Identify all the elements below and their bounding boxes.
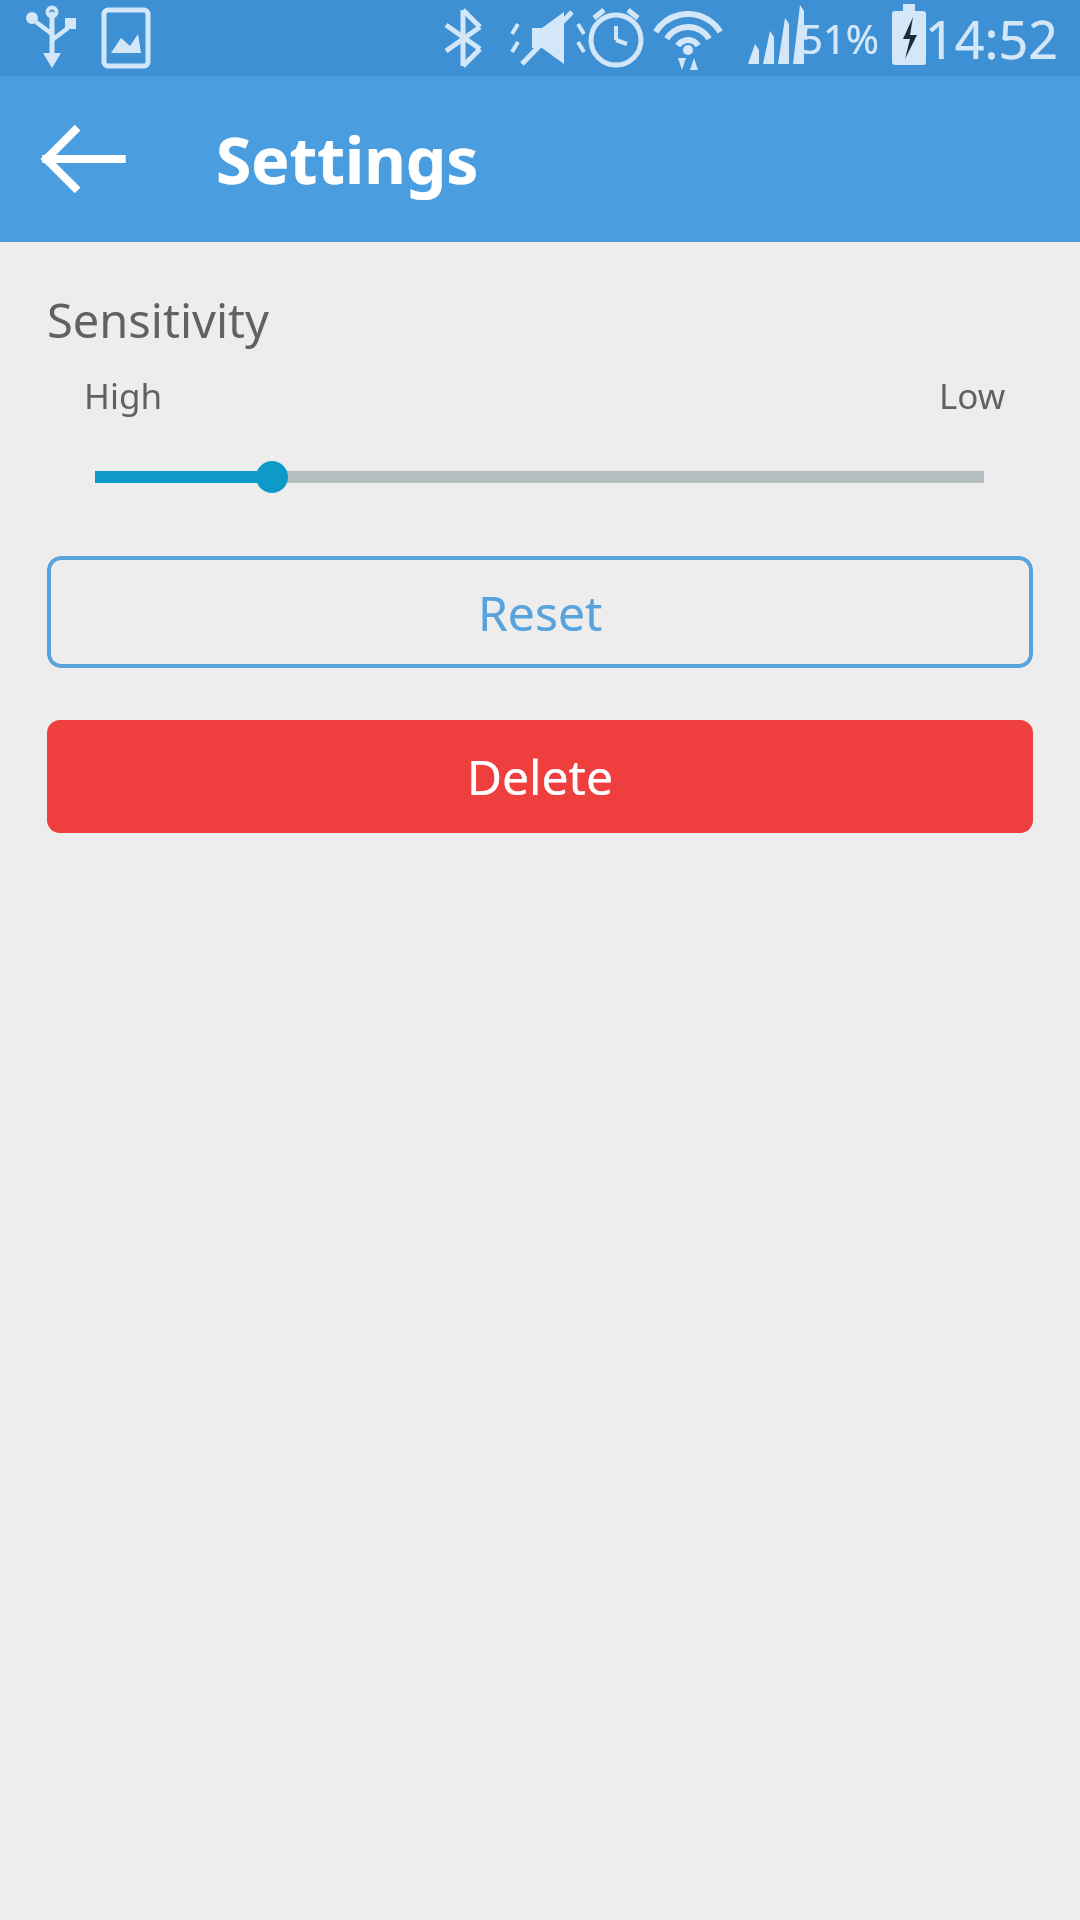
staticText: Settings (216, 116, 479, 203)
staticText: High (84, 372, 163, 420)
button[interactable]: Delete (47, 720, 1033, 833)
button[interactable] (0, 447, 1080, 507)
staticText: Low (939, 372, 1006, 420)
staticText: Delete (467, 744, 613, 809)
staticText: 14:52 (925, 3, 1058, 74)
staticText: Sensitivity (47, 288, 270, 352)
staticText: 51% (800, 11, 879, 65)
button[interactable]: Back (34, 108, 136, 210)
staticText: Reset (478, 580, 603, 645)
button[interactable]: Reset (47, 556, 1033, 668)
